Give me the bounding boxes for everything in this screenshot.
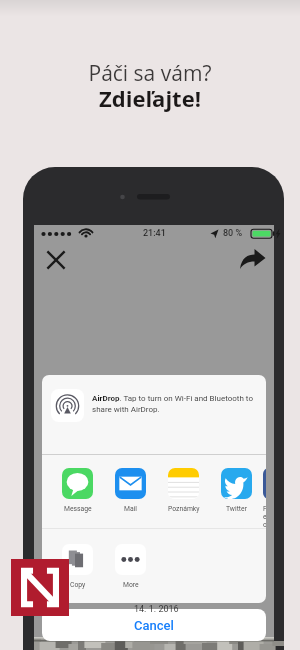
staticText: Facebook (263, 505, 266, 529)
staticText: Zdieľajte! (0, 83, 300, 113)
button[interactable]: Mail (104, 468, 157, 513)
staticText: 21:41 (143, 228, 166, 239)
button[interactable]: More (104, 544, 157, 589)
button[interactable]: Twitter (210, 468, 263, 513)
button[interactable]: Cancel (42, 609, 266, 641)
button[interactable]: AirDrop. Tap to turn on Wi-Fi and Blueto… (42, 375, 266, 454)
button[interactable]: Copy (51, 544, 104, 589)
staticText: Mail (124, 505, 137, 513)
staticText: More (123, 581, 139, 589)
staticText: Cancel (134, 618, 174, 633)
button[interactable]: Facebook (263, 468, 266, 529)
staticText: Copy (70, 581, 86, 589)
staticText: AirDrop. Tap to turn on Wi-Fi and Blueto… (92, 394, 266, 414)
button[interactable]: Close (40, 244, 72, 276)
staticText: Twitter (226, 505, 247, 513)
staticText: Páči sa vám? (0, 59, 300, 88)
button[interactable]: Share (237, 244, 269, 276)
staticText: 14. 1. 2016 (134, 604, 179, 615)
button[interactable]: Poznámky (157, 468, 210, 513)
staticText: Poznámky (168, 505, 200, 513)
staticText: Message (64, 505, 92, 513)
button[interactable]: Message (51, 468, 104, 513)
button[interactable]: Logo (11, 559, 69, 616)
staticText: 80 % (223, 228, 243, 239)
